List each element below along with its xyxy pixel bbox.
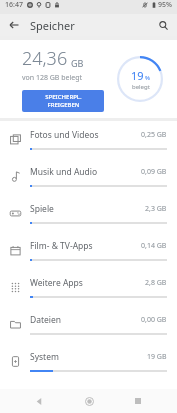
staticText: von 128 GB belegt xyxy=(22,73,83,83)
staticText: 0,25 GB xyxy=(141,130,167,140)
button[interactable]: Spiele xyxy=(0,195,177,232)
button[interactable]: Zurück xyxy=(6,17,22,33)
staticText: 0,09 GB xyxy=(141,167,167,177)
staticText: Speicher xyxy=(30,18,75,33)
button[interactable]: Musik und Audio xyxy=(0,158,177,195)
button[interactable]: Weitere Apps xyxy=(0,269,177,306)
staticText: SPEICHERPL. FREIGEBEN xyxy=(45,93,82,109)
staticText: 0,14 GB xyxy=(141,241,167,251)
staticText: 2,3 GB xyxy=(145,204,167,214)
staticText: 19 xyxy=(131,68,144,83)
button[interactable]: System xyxy=(0,343,177,380)
button[interactable]: Suchen xyxy=(155,17,171,33)
staticText: Spiele xyxy=(30,203,54,215)
staticText: Fotos und Videos xyxy=(30,129,99,141)
staticText: 24,36 xyxy=(22,46,68,71)
staticText: 19 GB xyxy=(147,352,167,362)
staticText: GB xyxy=(71,57,84,69)
staticText: Musik und Audio xyxy=(30,166,98,178)
button[interactable]: Zurück xyxy=(28,390,50,412)
staticText: Film- & TV-Apps xyxy=(30,240,93,252)
button[interactable]: SPEICHERPL. FREIGEBEN xyxy=(22,90,104,112)
staticText: 95% xyxy=(158,0,172,10)
staticText: Weitere Apps xyxy=(30,277,83,289)
staticText: % xyxy=(145,74,150,82)
button[interactable]: Dateien xyxy=(0,306,177,343)
staticText: belegt xyxy=(132,83,150,91)
staticText: 2,8 GB xyxy=(145,278,167,288)
staticText: System xyxy=(30,351,59,363)
button[interactable]: Film- & TV-Apps xyxy=(0,232,177,269)
button[interactable]: Fotos und Videos xyxy=(0,121,177,158)
staticText: 16:47 xyxy=(5,0,23,10)
button[interactable]: Zuletzt verwendet xyxy=(127,390,149,412)
button[interactable]: Startbildschirm xyxy=(78,390,100,412)
staticText: 0,00 GB xyxy=(141,315,167,325)
staticText: Dateien xyxy=(30,314,62,326)
